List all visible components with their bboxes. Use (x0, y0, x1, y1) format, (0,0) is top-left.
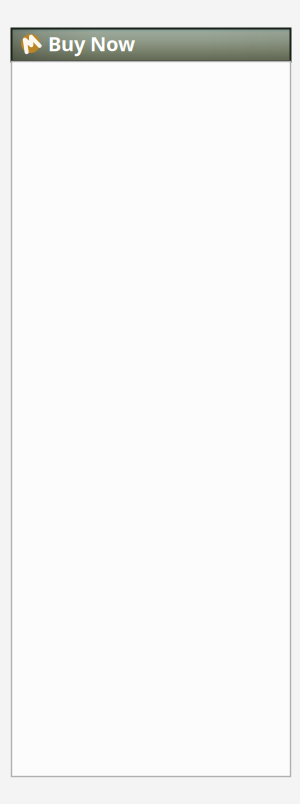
button[interactable]: Buy Now (11, 28, 290, 61)
staticText: Buy Now (48, 30, 135, 57)
